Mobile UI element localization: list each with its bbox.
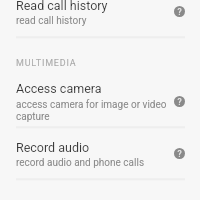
staticText: access camera for image or video capture — [16, 99, 169, 122]
staticText: read call history — [16, 15, 169, 27]
button[interactable] — [0, 128, 200, 180]
staticText: Access camera — [16, 81, 102, 96]
staticText: ? — [177, 149, 182, 159]
staticText: Record audio — [16, 140, 90, 155]
staticText: ? — [177, 97, 182, 107]
staticText: ? — [177, 7, 182, 17]
staticText: Read call history — [16, 0, 108, 13]
button[interactable]: Help — [169, 91, 189, 111]
staticText: MULTIMEDIA — [16, 58, 77, 69]
button[interactable] — [0, 0, 200, 37]
button[interactable]: Help — [169, 1, 189, 21]
button[interactable] — [0, 68, 200, 127]
staticText: record audio and phone calls — [16, 157, 169, 169]
button[interactable]: Help — [169, 143, 189, 163]
